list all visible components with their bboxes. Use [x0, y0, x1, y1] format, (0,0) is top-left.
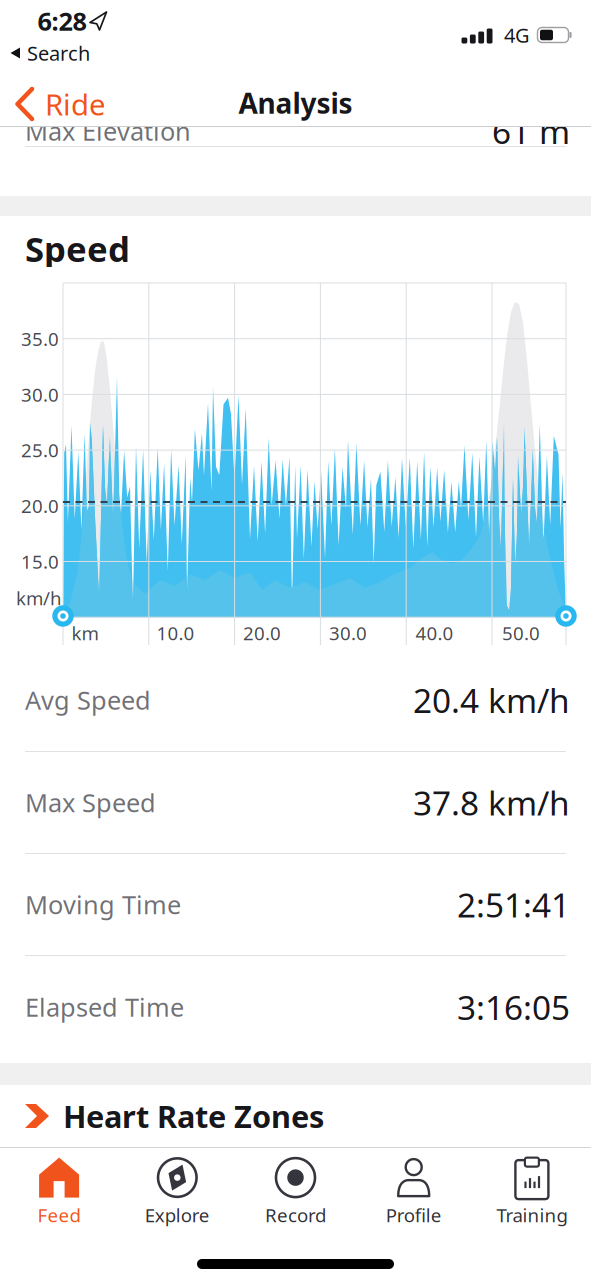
staticText: Moving Time — [25, 888, 181, 921]
staticText: 20.0 — [21, 493, 59, 518]
staticText: Elapsed Time — [25, 990, 184, 1024]
button[interactable]: Record — [236, 1153, 355, 1231]
staticText: 25.0 — [21, 438, 59, 462]
staticText: Heart Rate Zones — [63, 1096, 324, 1136]
staticText: 35.0 — [21, 326, 59, 351]
staticText: Max Elevation — [25, 114, 191, 148]
button[interactable]: Search — [10, 41, 120, 65]
staticText: Profile — [386, 1203, 442, 1227]
staticText: 30.0 — [21, 382, 59, 407]
staticText: 40.0 — [416, 621, 454, 645]
staticText: Record — [265, 1203, 326, 1227]
staticText: 20.0 — [243, 621, 281, 645]
button[interactable]: Ride — [15, 82, 145, 126]
staticText: 6:28 — [37, 4, 86, 38]
staticText: 4G — [504, 22, 530, 48]
staticText: 3:16:05 — [457, 985, 570, 1029]
staticText: Feed — [38, 1203, 81, 1227]
staticText: 2:51:41 — [457, 882, 570, 927]
staticText: km/h — [16, 586, 62, 610]
button[interactable]: Feed — [0, 1153, 118, 1231]
staticText: Training — [496, 1203, 567, 1227]
staticText: Search — [27, 40, 90, 66]
staticText: km — [71, 621, 98, 645]
staticText: Max Speed — [25, 786, 156, 819]
staticText: 50.0 — [502, 621, 540, 645]
staticText: 15.0 — [21, 549, 59, 574]
staticText: Avg Speed — [25, 683, 151, 717]
button[interactable]: Training — [473, 1153, 591, 1231]
staticText: 61 m — [492, 109, 570, 153]
staticText: 20.4 km/h — [413, 678, 570, 722]
button[interactable]: Profile — [355, 1153, 473, 1231]
staticText: 10.0 — [156, 621, 194, 645]
staticText: Ride — [45, 84, 106, 123]
staticText: Analysis — [238, 84, 352, 122]
staticText: Explore — [145, 1203, 210, 1227]
staticText: Speed — [25, 225, 130, 271]
staticText: 30.0 — [329, 621, 367, 645]
button[interactable]: Explore — [118, 1153, 236, 1231]
staticText: 37.8 km/h — [413, 780, 570, 825]
